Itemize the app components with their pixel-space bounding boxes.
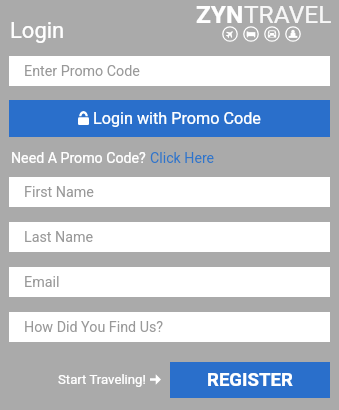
button[interactable]: Account xyxy=(285,26,301,42)
button[interactable]: Flights xyxy=(222,26,238,42)
staticText: Need A Promo Code? xyxy=(11,150,150,167)
button[interactable]: Email xyxy=(9,267,330,297)
button[interactable]: Hotels xyxy=(243,26,259,42)
staticText: Last Name xyxy=(24,229,94,246)
staticText: Enter Promo Code xyxy=(24,63,140,80)
button[interactable]: Cars xyxy=(264,26,280,42)
staticText: Start Traveling! xyxy=(58,372,146,387)
button[interactable]: Login with Promo Code xyxy=(9,100,330,137)
staticText: TRAVEL xyxy=(244,0,332,29)
staticText: First Name xyxy=(24,184,94,201)
staticText: How Did You Find Us? xyxy=(24,319,164,336)
staticText: Login xyxy=(10,18,65,44)
button[interactable]: How Did You Find Us? xyxy=(9,312,330,342)
button[interactable]: Click Here xyxy=(150,150,215,167)
staticText: ZYN xyxy=(196,0,244,29)
staticText: REGISTER xyxy=(207,369,293,391)
button[interactable]: Last Name xyxy=(9,222,330,252)
staticText: Email xyxy=(24,274,60,291)
button[interactable]: Enter Promo Code xyxy=(9,56,330,86)
button[interactable]: REGISTER xyxy=(170,362,330,398)
button[interactable]: First Name xyxy=(9,177,330,207)
staticText: Login with Promo Code xyxy=(93,109,261,128)
